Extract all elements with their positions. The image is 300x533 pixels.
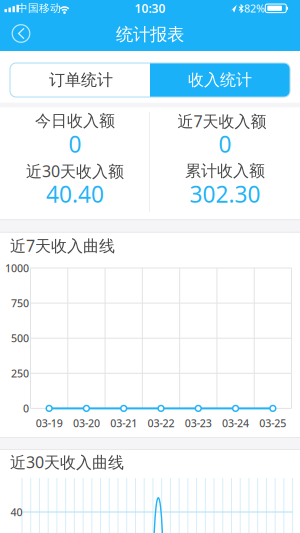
staticText: 03-19 [36,416,63,430]
staticText: 03-21 [110,416,137,430]
staticText: 累计收入额 [185,161,265,181]
staticText: 近7天收入曲线 [10,235,115,256]
staticText: 0 [23,401,29,415]
staticText: 10:30 [134,0,165,16]
staticText: 03-22 [147,416,174,430]
staticText: 03-23 [185,416,212,430]
staticText: 40 [10,505,22,519]
staticText: 订单统计 [49,70,113,90]
staticText: 250 [11,366,29,380]
button[interactable]: 收入统计 [150,63,290,97]
staticText: 03-25 [259,416,286,430]
staticText: 近30天收入额 [26,160,124,182]
staticText: 0 [218,129,231,159]
staticText: 统计报表 [116,24,184,45]
button[interactable] [7,19,35,47]
staticText: 82% [244,1,265,15]
staticText: 500 [11,331,29,345]
staticText: 今日收入额 [35,111,115,131]
staticText: 03-24 [222,416,249,430]
staticText: 1000 [5,261,29,275]
staticText: 近30天收入曲线 [10,451,124,473]
staticText: 收入统计 [188,70,252,90]
staticText: 750 [11,296,29,310]
staticText: 0 [68,129,81,159]
staticText: 03-20 [73,416,100,430]
staticText: 302.30 [189,179,260,209]
button[interactable]: 订单统计 [10,63,150,97]
staticText: 近7天收入额 [177,110,266,132]
staticText: 中国移动 [17,2,61,15]
staticText: 40.40 [46,179,104,209]
